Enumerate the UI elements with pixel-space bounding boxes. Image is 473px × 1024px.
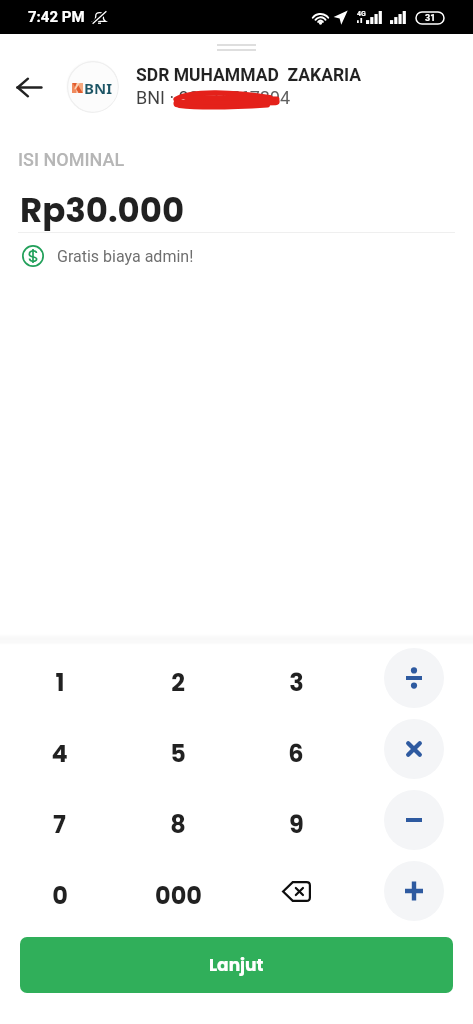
staticText: 6 — [288, 737, 304, 771]
staticText: SDR MUHAMMAD ZAKARIA — [136, 65, 362, 86]
staticText: 5 — [170, 737, 186, 771]
button[interactable]: 1 — [0, 647, 119, 718]
staticText: 7 — [53, 808, 66, 842]
button[interactable]: 3 — [237, 647, 355, 718]
staticText: 4G — [357, 10, 366, 18]
staticText: 1 — [55, 666, 65, 700]
staticText: BNI · 0 — [136, 87, 189, 108]
button[interactable]: 000 — [119, 860, 237, 931]
button[interactable]: 0 — [0, 860, 119, 931]
staticText: 31 — [425, 13, 436, 24]
staticText: Gratis biaya admin! — [57, 247, 194, 266]
staticText: 000 — [155, 879, 202, 913]
staticText: 2134567894 — [189, 87, 291, 108]
button[interactable]: 7 — [0, 789, 119, 860]
button[interactable]: Backspace — [237, 860, 355, 931]
button[interactable]: Minus — [384, 790, 444, 850]
staticText: 3 — [289, 666, 304, 700]
button[interactable]: Back — [0, 61, 58, 113]
button[interactable]: 6 — [237, 718, 355, 789]
button[interactable]: Lanjut — [20, 937, 453, 993]
button[interactable]: 2 — [119, 647, 237, 718]
button[interactable]: 4 — [0, 718, 119, 789]
staticText: 2 — [171, 666, 185, 700]
staticText: 4 — [51, 737, 68, 771]
button[interactable]: Plus — [384, 861, 444, 921]
staticText: Lanjut — [209, 953, 264, 977]
staticText: BNI — [84, 78, 113, 98]
staticText: 7:42 PM — [28, 8, 85, 26]
button[interactable]: 5 — [119, 718, 237, 789]
button[interactable]: 8 — [119, 789, 237, 860]
staticText: 8 — [170, 808, 186, 842]
button[interactable]: 9 — [237, 789, 355, 860]
button[interactable]: Divide — [384, 648, 444, 708]
staticText: Rp30.000 — [20, 186, 185, 234]
staticText: ISI NOMINAL — [18, 149, 125, 170]
staticText: 9 — [289, 808, 304, 842]
button[interactable]: Multiply — [384, 719, 444, 779]
staticText: 0 — [52, 879, 68, 913]
